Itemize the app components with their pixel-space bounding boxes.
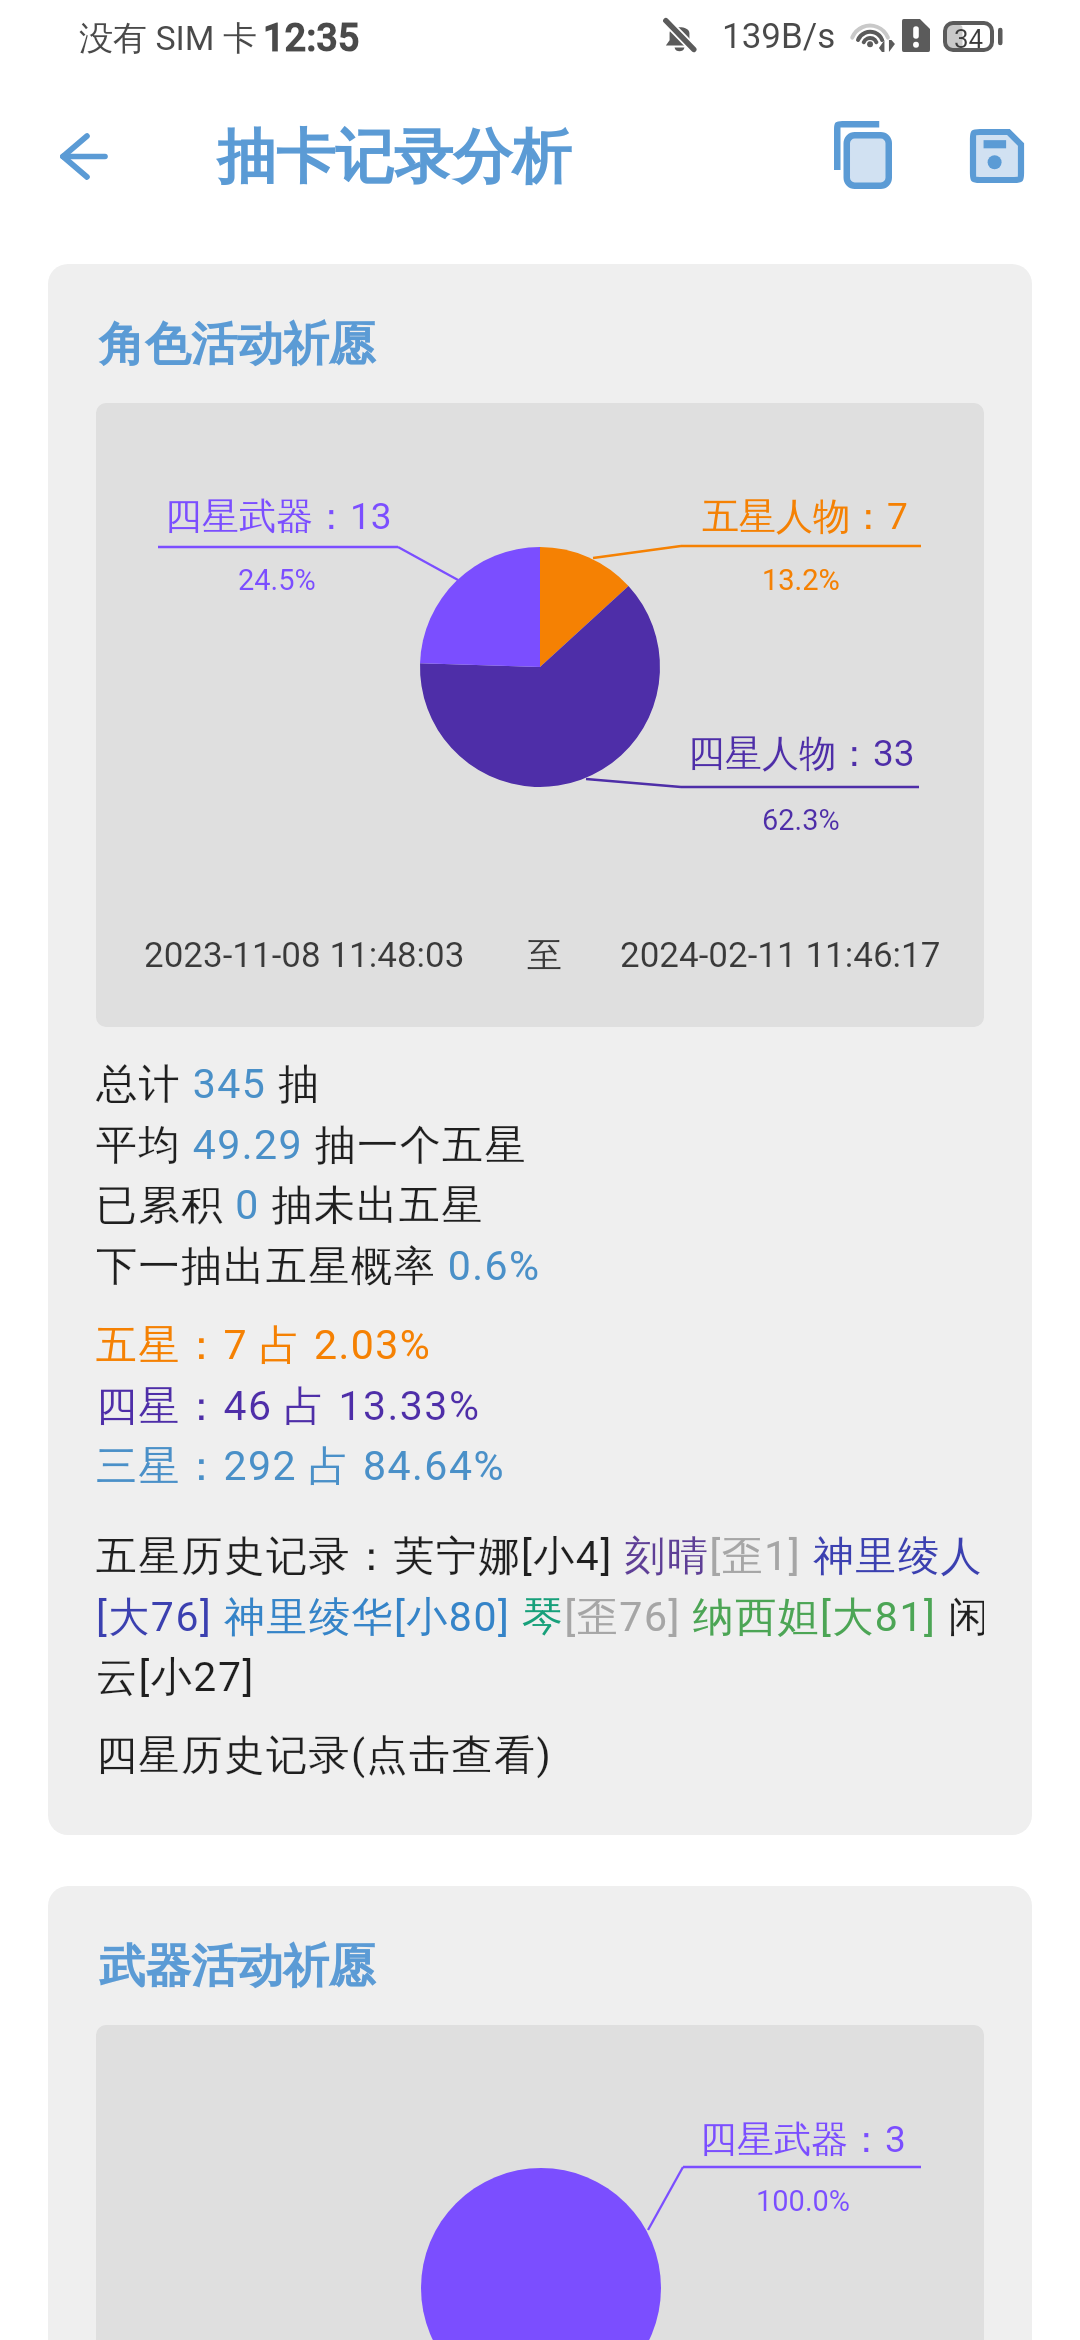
staticText: 四星：46 占 13.33%: [96, 1381, 481, 1433]
staticText: 五星人物：7: [702, 493, 908, 540]
staticText: 五星：7 占 2.03%: [96, 1320, 432, 1372]
staticText: 62.3%: [762, 803, 840, 837]
staticText: 12:35: [263, 16, 360, 61]
staticText: 34: [954, 24, 984, 54]
staticText: 四星历史记录(点击查看): [96, 1730, 553, 1782]
staticText: 云[小27]: [96, 1652, 255, 1704]
staticText: 下一抽出五星概率 0.6%: [96, 1241, 541, 1293]
staticText: 总计 345 抽: [96, 1059, 321, 1111]
staticText: 武器活动祈愿: [99, 1938, 375, 1996]
staticText: 四星人物：33: [688, 730, 915, 777]
staticText: 2023-11-08 11:48:03: [144, 935, 465, 976]
staticText: 四星武器：3: [700, 2116, 906, 2163]
staticText: 没有 SIM 卡: [79, 17, 257, 60]
staticText: 24.5%: [238, 563, 316, 597]
button[interactable]: 四星历史记录(点击查看): [96, 1730, 553, 1782]
staticText: 2024-02-11 11:46:17: [620, 935, 941, 976]
staticText: 五星历史记录：芙宁娜[小4] 刻晴[歪1] 神里绫人: [96, 1531, 983, 1583]
staticText: 四星武器：13: [165, 493, 392, 540]
button[interactable]: 保存: [949, 108, 1045, 204]
staticText: [大76] 神里绫华[小80] 琴[歪76] 纳西妲[大81] 闲: [96, 1592, 984, 1644]
staticText: 抽卡记录分析: [217, 120, 571, 194]
staticText: 平均 49.29 抽一个五星: [96, 1120, 528, 1172]
staticText: 13.2%: [762, 563, 840, 597]
staticText: 角色活动祈愿: [99, 316, 375, 374]
button[interactable]: 复制: [815, 107, 911, 203]
staticText: 139B/s: [722, 16, 836, 57]
staticText: 至: [527, 933, 562, 977]
staticText: 100.0%: [756, 2184, 851, 2218]
staticText: 已累积 0 抽未出五星: [96, 1180, 484, 1232]
staticText: 三星：292 占 84.64%: [96, 1441, 505, 1493]
button[interactable]: 返回: [36, 108, 132, 204]
